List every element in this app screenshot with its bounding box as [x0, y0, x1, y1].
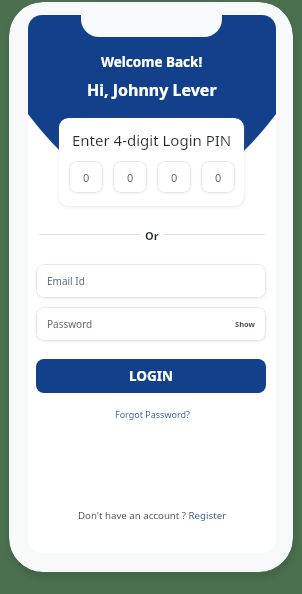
staticText: 0 [215, 170, 222, 185]
button[interactable]: Don't have an account ? Register [74, 507, 231, 524]
staticText: Email Id [47, 274, 85, 288]
button[interactable]: 0 [113, 161, 147, 193]
button[interactable]: 0 [201, 161, 235, 193]
button[interactable]: LOGIN [36, 359, 266, 393]
staticText: Welcome Back! [101, 53, 203, 71]
button[interactable]: Forgot Password? [111, 406, 194, 422]
button[interactable]: 0 [69, 161, 103, 193]
staticText: 0 [171, 170, 178, 185]
staticText: Forgot Password? [115, 408, 190, 420]
staticText: Password [47, 317, 93, 331]
staticText: Enter 4-digit Login PIN [72, 130, 232, 150]
staticText: Don't have an account ? Register [78, 509, 227, 522]
staticText: Show [235, 319, 255, 329]
button[interactable]: Email Id [36, 264, 266, 298]
button[interactable]: 0 [157, 161, 191, 193]
staticText: Or [145, 228, 159, 240]
staticText: 0 [127, 170, 134, 185]
staticText: 0 [83, 170, 90, 185]
staticText: Hi, Johnny Lever [87, 79, 217, 101]
button[interactable]: Password [36, 307, 266, 341]
staticText: LOGIN [129, 367, 173, 385]
